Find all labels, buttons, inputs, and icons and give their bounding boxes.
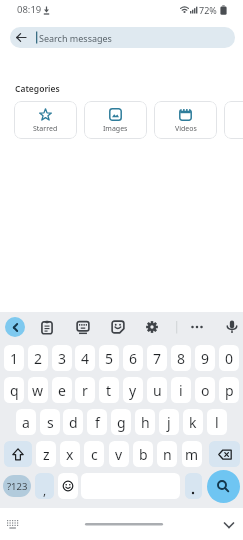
staticText: e: [58, 381, 66, 400]
button[interactable]: w: [28, 377, 48, 403]
staticText: g: [117, 413, 126, 432]
button[interactable]: Search messages: [10, 27, 235, 48]
staticText: r: [82, 381, 88, 400]
staticText: Search messages: [39, 32, 112, 44]
button[interactable]: [207, 470, 240, 503]
button[interactable]: j: [159, 409, 179, 435]
staticText: w: [32, 381, 44, 400]
button[interactable]: e: [52, 377, 72, 403]
button[interactable]: v: [109, 441, 129, 467]
button[interactable]: 1: [4, 345, 24, 371]
button[interactable]: d: [63, 409, 83, 435]
staticText: 8: [177, 349, 186, 368]
button[interactable]: u: [147, 377, 167, 403]
staticText: 0: [225, 349, 234, 368]
button[interactable]: ?123: [3, 475, 31, 497]
button[interactable]: Videos: [154, 101, 217, 139]
staticText: a: [22, 413, 30, 432]
button[interactable]: k: [183, 409, 203, 435]
staticText: Starred: [33, 124, 58, 134]
staticText: p: [225, 381, 234, 400]
staticText: c: [91, 445, 98, 464]
button[interactable]: 5: [99, 345, 119, 371]
button[interactable]: [75, 319, 91, 335]
staticText: 1: [10, 349, 19, 368]
button[interactable]: s: [40, 409, 60, 435]
button[interactable]: [144, 319, 160, 335]
staticText: x: [66, 445, 74, 464]
button[interactable]: f: [87, 409, 107, 435]
button[interactable]: 8: [171, 345, 191, 371]
button[interactable]: ,: [35, 473, 54, 499]
button[interactable]: g: [111, 409, 131, 435]
button[interactable]: [224, 101, 243, 139]
staticText: m: [185, 445, 199, 464]
button[interactable]: [110, 319, 126, 335]
button[interactable]: [5, 517, 21, 533]
button[interactable]: h: [135, 409, 155, 435]
staticText: 6: [129, 349, 138, 368]
button[interactable]: p: [219, 377, 239, 403]
button[interactable]: [39, 319, 55, 335]
button[interactable]: 0: [219, 345, 239, 371]
button[interactable]: 6: [123, 345, 143, 371]
staticText: Videos: [175, 124, 197, 134]
button[interactable]: r: [75, 377, 95, 403]
button[interactable]: l: [207, 409, 227, 435]
button[interactable]: z: [36, 441, 56, 467]
button[interactable]: [209, 441, 240, 467]
staticText: f: [95, 413, 100, 432]
button[interactable]: [5, 317, 25, 337]
staticText: i: [179, 381, 183, 400]
staticText: 2: [34, 349, 43, 368]
button[interactable]: 2: [28, 345, 48, 371]
button[interactable]: q: [4, 377, 24, 403]
staticText: l: [215, 413, 219, 432]
button[interactable]: [220, 518, 237, 533]
button[interactable]: x: [60, 441, 80, 467]
button[interactable]: a: [16, 409, 36, 435]
button[interactable]: [58, 473, 78, 499]
button[interactable]: y: [123, 377, 143, 403]
staticText: b: [139, 445, 148, 464]
staticText: q: [10, 381, 19, 400]
staticText: 7: [153, 349, 162, 368]
staticText: t: [106, 381, 112, 400]
button[interactable]: [189, 319, 205, 335]
staticText: 72%: [199, 4, 217, 16]
button[interactable]: [185, 473, 202, 499]
button[interactable]: Images: [84, 101, 147, 139]
staticText: z: [43, 445, 50, 464]
button[interactable]: c: [84, 441, 104, 467]
staticText: 5: [105, 349, 114, 368]
staticText: k: [189, 413, 197, 432]
button[interactable]: [224, 319, 240, 335]
button[interactable]: t: [99, 377, 119, 403]
staticText: u: [153, 381, 162, 400]
staticText: y: [129, 381, 137, 400]
staticText: ?123: [7, 480, 28, 493]
button[interactable]: 9: [195, 345, 215, 371]
button[interactable]: b: [133, 441, 153, 467]
staticText: s: [47, 413, 54, 432]
button[interactable]: [4, 441, 32, 467]
button[interactable]: 3: [52, 345, 72, 371]
staticText: Images: [103, 124, 128, 134]
staticText: 3: [58, 349, 67, 368]
button[interactable]: m: [182, 441, 202, 467]
button[interactable]: 4: [75, 345, 95, 371]
staticText: 9: [201, 349, 210, 368]
staticText: 4: [81, 349, 90, 368]
staticText: d: [69, 413, 78, 432]
button[interactable]: 7: [147, 345, 167, 371]
staticText: 08:19: [17, 3, 42, 16]
button[interactable]: o: [195, 377, 215, 403]
button[interactable]: Starred: [14, 101, 77, 139]
staticText: j: [167, 413, 171, 432]
staticText: n: [163, 445, 172, 464]
staticText: ,: [43, 482, 47, 498]
button[interactable]: i: [171, 377, 191, 403]
staticText: Categories: [15, 83, 60, 95]
button[interactable]: n: [157, 441, 177, 467]
